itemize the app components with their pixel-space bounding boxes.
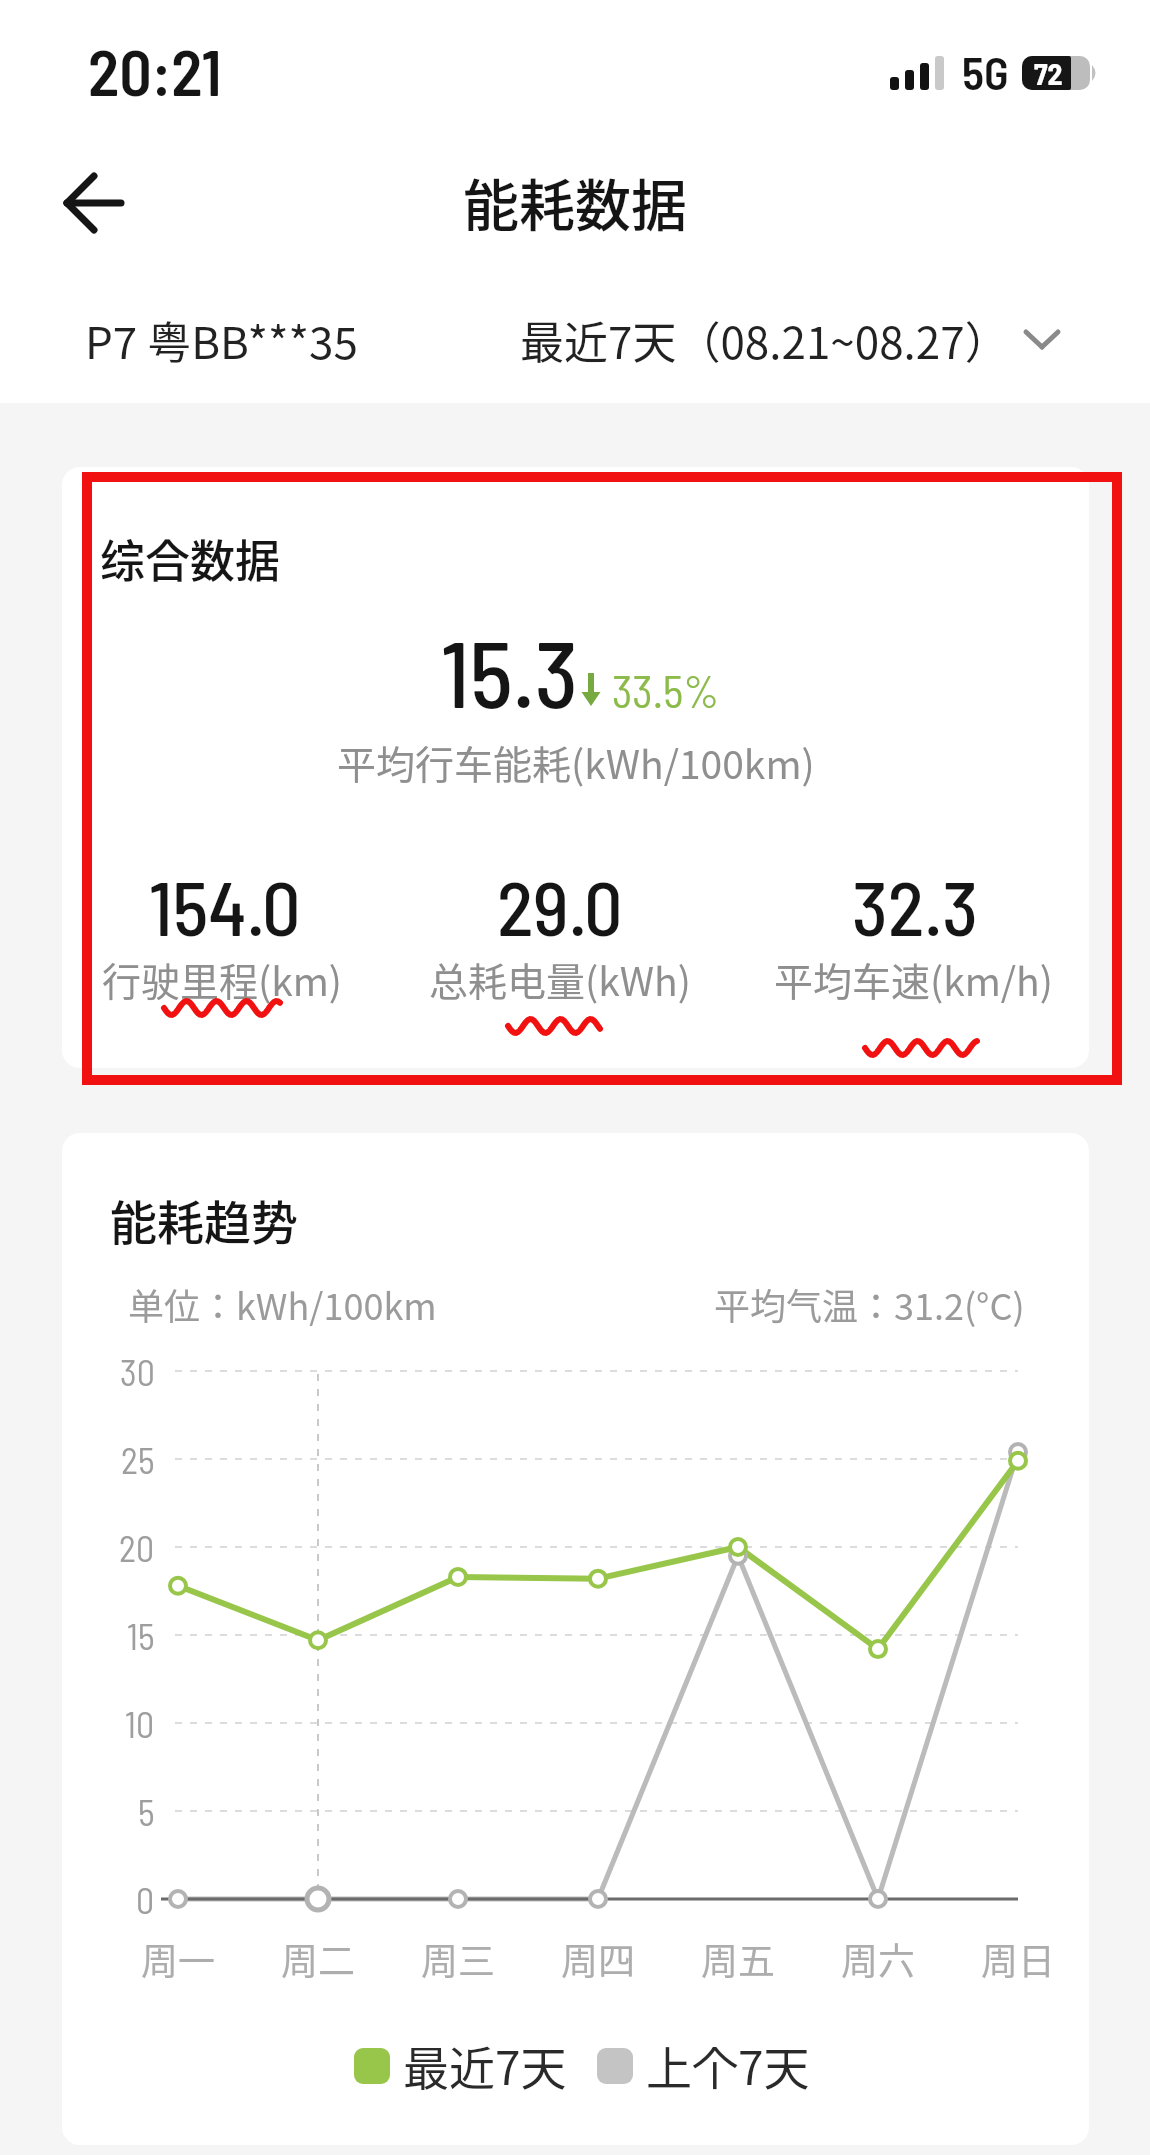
staticText: 5 — [138, 1790, 155, 1833]
staticText: 能耗数据 — [463, 161, 687, 242]
staticText: 29.0 — [497, 860, 623, 951]
staticText: 154.0 — [149, 860, 301, 951]
staticText: 平均气温：31.2(°C) — [714, 1278, 1025, 1330]
button[interactable] — [40, 155, 150, 250]
staticText: 行驶里程(km) — [102, 951, 343, 1007]
button[interactable]: 上个7天 — [583, 2030, 813, 2100]
staticText: 最近7天（08.21~08.27） — [520, 308, 1009, 372]
staticText: 72 — [1034, 55, 1063, 91]
staticText: 0 — [136, 1878, 155, 1921]
staticText: 32.3 — [852, 860, 979, 951]
staticText: 单位：kWh/100km — [128, 1278, 437, 1330]
staticText: 总耗电量(kWh) — [429, 951, 691, 1007]
staticText: 周六 — [841, 1932, 915, 1986]
staticText: 周五 — [701, 1932, 775, 1986]
staticText: 20 — [119, 1526, 155, 1569]
staticText: 周三 — [421, 1932, 495, 1986]
button[interactable]: 最近7天 — [340, 2030, 570, 2100]
staticText: 最近7天 — [403, 2032, 567, 2099]
staticText: 综合数据 — [100, 526, 281, 591]
staticText: 20:21 — [88, 32, 222, 109]
button[interactable]: 最近7天（08.21~08.27） — [500, 295, 1080, 385]
button[interactable]: P7 粤BB***35 — [60, 295, 460, 385]
staticText: 周四 — [561, 1932, 635, 1986]
staticText: P7 粤BB***35 — [85, 308, 358, 372]
staticText: 周二 — [281, 1932, 355, 1986]
staticText: 15 — [127, 1614, 155, 1657]
staticText: 周日 — [981, 1932, 1055, 1986]
staticText: 10 — [125, 1702, 155, 1745]
staticText: 30 — [120, 1350, 155, 1393]
staticText: 5G — [962, 44, 1009, 99]
staticText: 平均行车能耗(kWh/100km) — [337, 734, 815, 790]
staticText: 周一 — [141, 1932, 215, 1986]
staticText: 15.3 — [441, 616, 578, 726]
staticText: 25 — [121, 1438, 155, 1481]
staticText: 能耗趋势 — [110, 1185, 298, 1253]
staticText: 平均车速(km/h) — [774, 951, 1053, 1007]
staticText: 33.5% — [612, 664, 720, 717]
staticText: 上个7天 — [646, 2032, 810, 2099]
